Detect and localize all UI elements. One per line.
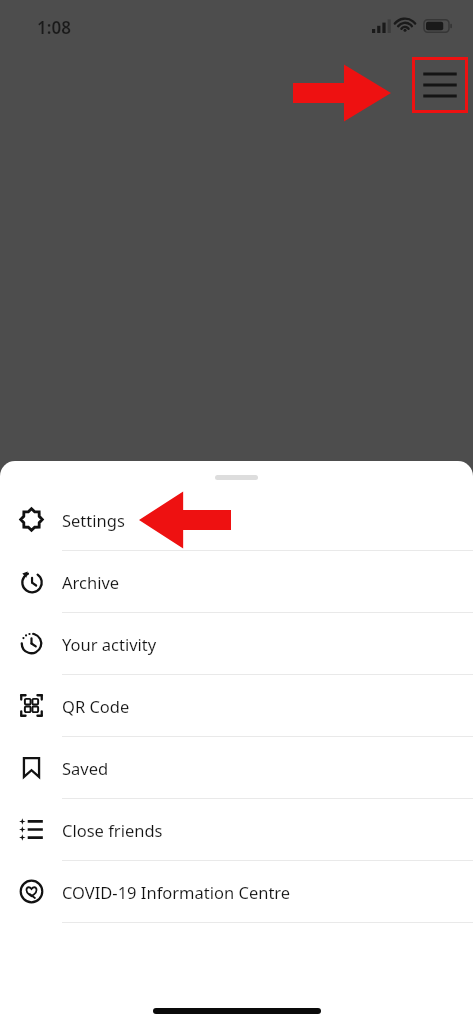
button[interactable]: COVID-19 Information Centre (0, 861, 473, 922)
staticText: COVID-19 Information Centre (62, 881, 291, 903)
button[interactable]: Settings (0, 489, 473, 550)
button[interactable]: Close friends (0, 799, 473, 860)
staticText: QR Code (62, 695, 130, 717)
button[interactable]: Menu (412, 57, 468, 113)
button[interactable]: Archive (0, 551, 473, 612)
staticText: Archive (62, 571, 120, 593)
staticText: 1:08 (37, 16, 71, 39)
button[interactable]: Your activity (0, 613, 473, 674)
button[interactable]: QR Code (0, 675, 473, 736)
staticText: Saved (62, 757, 109, 779)
staticText: Your activity (62, 633, 157, 655)
button[interactable]: Saved (0, 737, 473, 798)
staticText: Close friends (62, 819, 163, 841)
staticText: Settings (62, 509, 125, 531)
